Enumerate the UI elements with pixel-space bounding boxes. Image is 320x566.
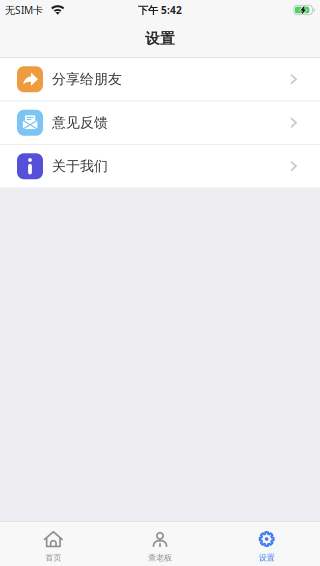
staticText: 设置 xyxy=(145,29,175,48)
staticText: 分享给朋友 xyxy=(52,70,122,88)
staticText: 无SIM卡 xyxy=(5,3,43,17)
staticText: 意见反馈 xyxy=(52,114,108,131)
button[interactable]: 意见反馈 xyxy=(0,101,320,144)
staticText: 首页 xyxy=(45,552,61,563)
button[interactable]: 设置 xyxy=(213,522,320,566)
button[interactable]: 首页 xyxy=(0,522,107,566)
staticText: 查老板 xyxy=(148,552,172,563)
staticText: 下午 5:42 xyxy=(138,3,182,17)
button[interactable]: 分享给朋友 xyxy=(0,58,320,100)
button[interactable]: 关于我们 xyxy=(0,145,320,187)
button[interactable]: 查老板 xyxy=(107,522,213,566)
staticText: 关于我们 xyxy=(52,157,108,175)
staticText: 设置 xyxy=(259,552,275,563)
